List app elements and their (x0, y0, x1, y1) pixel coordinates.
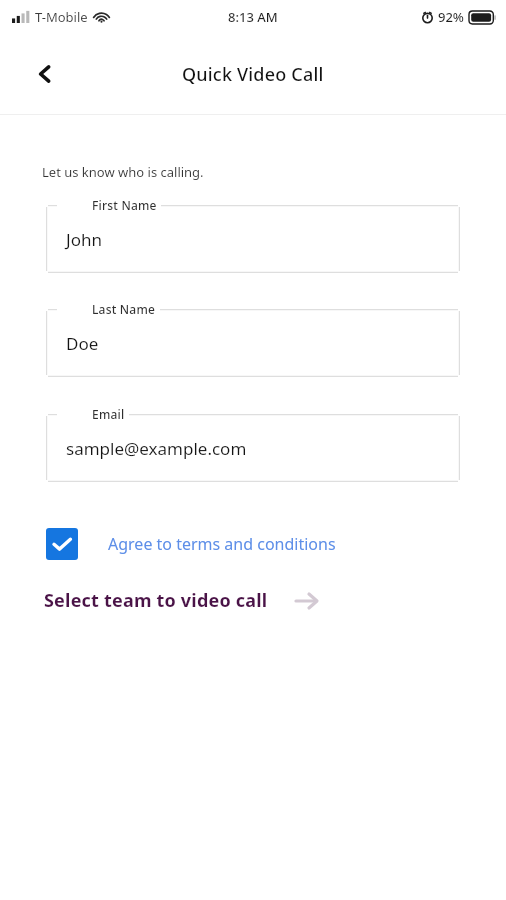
button[interactable]: Select team to video call (44, 588, 460, 613)
button[interactable]: Back (22, 52, 66, 96)
button[interactable]: First Name (46, 205, 460, 273)
button[interactable]: Agree to terms and conditions (46, 528, 460, 560)
staticText: 8:13 AM (228, 8, 278, 26)
staticText: John (66, 228, 102, 251)
staticText: Select team to video call (44, 588, 268, 613)
staticText: Quick Video Call (182, 62, 324, 87)
button[interactable]: Last Name (46, 309, 460, 377)
staticText: T-Mobile (35, 8, 88, 26)
staticText: sample@example.com (66, 437, 247, 460)
staticText: 92% (438, 8, 464, 26)
staticText: Last Name (92, 301, 156, 317)
staticText: Email (92, 406, 125, 422)
staticText: Doe (66, 332, 99, 355)
staticText: Agree to terms and conditions (108, 533, 336, 555)
staticText: Let us know who is calling. (42, 163, 204, 181)
staticText: First Name (92, 197, 157, 213)
button[interactable]: Email (46, 414, 460, 482)
